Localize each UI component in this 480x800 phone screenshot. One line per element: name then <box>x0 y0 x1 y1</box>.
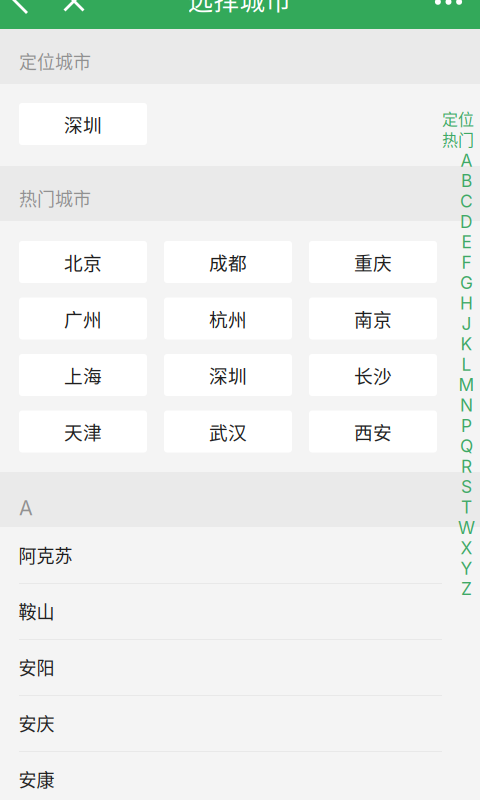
staticText: H <box>460 293 473 314</box>
staticText: 深圳 <box>64 110 102 137</box>
staticText: 热门 <box>442 127 474 150</box>
staticText: 长沙 <box>354 361 392 388</box>
staticText: R <box>461 456 472 477</box>
button[interactable]: 成都 <box>164 241 292 283</box>
button[interactable]: N <box>456 395 476 415</box>
button[interactable]: 武汉 <box>164 410 292 452</box>
button[interactable]: G <box>456 273 476 293</box>
button[interactable]: W <box>456 517 476 538</box>
staticText: S <box>461 476 472 497</box>
button[interactable]: 北京 <box>19 241 147 283</box>
button[interactable]: Q <box>456 436 476 456</box>
button[interactable]: 热门 <box>441 129 475 149</box>
button[interactable]: Back <box>0 0 43 22</box>
button[interactable]: B <box>456 171 476 191</box>
staticText: J <box>461 313 471 334</box>
staticText: 重庆 <box>354 248 392 275</box>
staticText: 定位城市 <box>19 48 91 74</box>
staticText: C <box>460 191 473 212</box>
staticText: 选择城市 <box>187 0 291 18</box>
staticText: 安康 <box>18 766 54 792</box>
staticText: A <box>460 150 472 171</box>
button[interactable]: 重庆 <box>309 241 437 283</box>
staticText: Z <box>461 578 472 599</box>
staticText: A <box>19 496 33 520</box>
button[interactable]: E <box>456 232 476 252</box>
button[interactable]: M <box>456 374 476 395</box>
staticText: Q <box>460 435 473 456</box>
button[interactable]: 天津 <box>19 410 147 452</box>
button[interactable]: X <box>456 538 476 558</box>
staticText: 鞍山 <box>18 598 54 624</box>
staticText: 热门城市 <box>19 185 91 211</box>
button[interactable]: R <box>456 456 476 477</box>
staticText: 成都 <box>209 248 247 275</box>
staticText: 杭州 <box>209 305 247 332</box>
button[interactable]: Close <box>52 0 96 23</box>
button[interactable]: 上海 <box>19 354 147 396</box>
button[interactable]: A <box>456 150 476 171</box>
button[interactable]: 长沙 <box>309 354 437 396</box>
button[interactable]: 西安 <box>309 410 437 452</box>
button[interactable]: F <box>456 252 476 273</box>
button[interactable]: 广州 <box>19 297 147 339</box>
staticText: 武汉 <box>209 418 247 445</box>
staticText: L <box>461 354 471 375</box>
button[interactable]: K <box>456 334 476 354</box>
button[interactable]: 阿克苏 <box>0 528 442 584</box>
button[interactable]: Z <box>456 578 476 599</box>
button[interactable]: Y <box>456 558 476 579</box>
staticText: 安阳 <box>18 654 54 680</box>
staticText: 上海 <box>64 361 102 388</box>
staticText: 阿克苏 <box>18 542 72 568</box>
button[interactable]: 南京 <box>309 297 437 339</box>
button[interactable]: L <box>456 354 476 375</box>
button[interactable]: 安庆 <box>0 696 442 752</box>
button[interactable]: P <box>456 415 476 436</box>
staticText: D <box>460 211 473 232</box>
staticText: 深圳 <box>209 361 247 388</box>
button[interactable]: S <box>456 476 476 497</box>
button[interactable]: T <box>456 497 476 517</box>
button[interactable]: More options <box>426 0 470 22</box>
staticText: E <box>461 231 471 252</box>
staticText: G <box>460 272 473 293</box>
button[interactable]: C <box>456 191 476 211</box>
staticText: P <box>461 415 472 436</box>
staticText: N <box>460 395 473 416</box>
button[interactable]: J <box>456 313 476 334</box>
staticText: 北京 <box>64 248 102 275</box>
button[interactable]: H <box>456 293 476 313</box>
staticText: W <box>458 517 475 538</box>
staticText: F <box>461 252 471 273</box>
staticText: 定位 <box>442 107 474 130</box>
staticText: K <box>460 333 472 354</box>
staticText: M <box>458 374 474 395</box>
staticText: X <box>460 537 472 558</box>
button[interactable]: 杭州 <box>164 297 292 339</box>
staticText: 西安 <box>354 418 392 445</box>
staticText: B <box>461 170 472 191</box>
staticText: 广州 <box>64 305 102 332</box>
staticText: 天津 <box>64 418 102 445</box>
staticText: 安庆 <box>18 710 54 736</box>
button[interactable]: 鞍山 <box>0 584 442 640</box>
staticText: 南京 <box>354 305 392 332</box>
button[interactable]: D <box>456 211 476 232</box>
button[interactable]: 定位 <box>441 108 475 129</box>
button[interactable]: 深圳 <box>164 354 292 396</box>
button[interactable]: 安阳 <box>0 640 442 696</box>
button[interactable]: 深圳 <box>19 103 147 145</box>
staticText: T <box>461 497 472 518</box>
staticText: Y <box>460 558 472 579</box>
button[interactable]: 安康 <box>0 752 442 800</box>
